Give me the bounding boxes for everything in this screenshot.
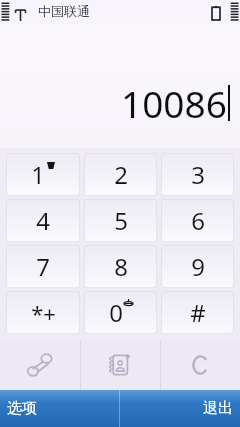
staticText: 4 bbox=[36, 204, 50, 237]
staticText: 中国联通 bbox=[38, 3, 90, 19]
staticText: 9 bbox=[191, 250, 205, 283]
button[interactable]: Add to contacts bbox=[81, 340, 160, 390]
button[interactable]: Call bbox=[0, 340, 80, 390]
staticText: 0 bbox=[109, 296, 123, 329]
button[interactable]: *+ bbox=[6, 291, 80, 334]
button[interactable]: 4 bbox=[6, 199, 80, 242]
button[interactable]: 5 bbox=[84, 199, 157, 242]
staticText: 退出 bbox=[203, 399, 233, 418]
staticText: 8 bbox=[114, 250, 128, 283]
button[interactable]: # bbox=[161, 291, 234, 334]
button[interactable]: 2 bbox=[84, 153, 157, 196]
button[interactable]: 6 bbox=[161, 199, 234, 242]
staticText: 10086 bbox=[121, 78, 227, 128]
staticText: 2 bbox=[114, 158, 128, 191]
button[interactable]: 3 bbox=[161, 153, 234, 196]
staticText: 6 bbox=[191, 204, 205, 237]
staticText: 7 bbox=[36, 250, 50, 283]
button[interactable]: 退出 bbox=[120, 390, 240, 427]
staticText: 1 bbox=[31, 158, 45, 191]
button[interactable]: 9 bbox=[161, 245, 234, 288]
button[interactable]: 1 bbox=[6, 153, 80, 196]
staticText: 3 bbox=[191, 158, 205, 191]
staticText: # bbox=[190, 296, 206, 329]
button[interactable]: 0 bbox=[84, 291, 157, 334]
button[interactable]: 7 bbox=[6, 245, 80, 288]
staticText: *+ bbox=[31, 298, 56, 328]
staticText: 5 bbox=[114, 204, 128, 237]
staticText: 选项 bbox=[7, 399, 37, 418]
button[interactable]: 选项 bbox=[0, 390, 119, 427]
button[interactable]: 8 bbox=[84, 245, 157, 288]
button[interactable]: Clear bbox=[161, 340, 240, 390]
